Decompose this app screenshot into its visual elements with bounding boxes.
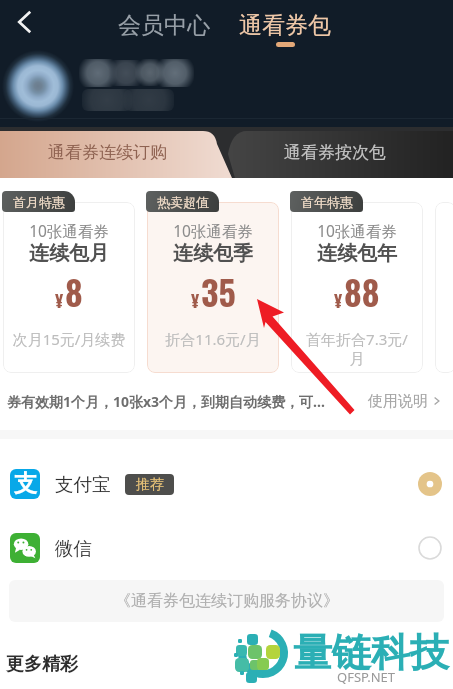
staticText: 微信 <box>55 537 92 560</box>
button[interactable]: 《通看券包连续订购服务协议》 <box>9 580 444 622</box>
button[interactable] <box>435 202 453 373</box>
staticText: 首年特惠 <box>301 194 353 210</box>
button[interactable]: 通看券连续订购 <box>0 127 215 178</box>
button[interactable]: 更多精彩 <box>6 653 78 676</box>
staticText: QFSP.NET <box>337 668 396 686</box>
staticText: 折合11.6元/月 <box>155 329 271 349</box>
button[interactable]: 微信 <box>0 516 453 580</box>
staticText: 通看券连续订购 <box>48 142 167 163</box>
staticText: 35 <box>201 266 236 316</box>
staticText: 10张通看券 <box>291 220 423 241</box>
staticText: 《通看券包连续订购服务协议》 <box>115 591 339 611</box>
staticText: 连续包月 <box>3 241 135 266</box>
staticText: 使用说明 <box>368 392 428 411</box>
button[interactable]: 会员中心 <box>114 9 214 42</box>
staticText: 更多精彩 <box>6 653 78 676</box>
staticText: 10张通看券 <box>147 220 279 241</box>
staticText: 连续包年 <box>291 241 423 266</box>
button[interactable]: 通看券按次包 <box>235 127 435 178</box>
button[interactable]: 10张通看券 <box>147 202 279 373</box>
staticText: 券有效期1个月，10张x3个月，到期自动续费，可... <box>7 392 325 411</box>
staticText: 通看券按次包 <box>284 142 386 163</box>
staticText: 通看券包 <box>239 11 331 40</box>
staticText: 支 <box>14 469 37 498</box>
button[interactable]: Back <box>2 0 46 44</box>
staticText: 8 <box>65 266 83 316</box>
button[interactable]: 10张通看券 <box>291 202 423 373</box>
staticText: 首月特惠 <box>13 194 65 210</box>
staticText: 10张通看券 <box>3 220 135 241</box>
button[interactable]: 10张通看券 <box>3 202 135 373</box>
staticText: ¥ <box>191 288 200 313</box>
staticText: 连续包季 <box>147 241 279 266</box>
staticText: 推荐 <box>136 476 164 494</box>
button[interactable]: 通看券包 <box>235 9 335 49</box>
staticText: 首年折合7.3元/月 <box>299 329 415 369</box>
staticText: 支付宝 <box>55 473 111 496</box>
button[interactable]: 券有效期1个月，10张x3个月，到期自动续费，可... <box>0 384 453 418</box>
staticText: ¥ <box>55 288 64 313</box>
staticText: 88 <box>344 266 380 316</box>
staticText: ¥ <box>334 288 343 313</box>
staticText: 量链科技 <box>293 628 449 677</box>
staticText: 热卖超值 <box>157 194 209 210</box>
button[interactable]: 支 <box>0 452 453 516</box>
staticText: 会员中心 <box>118 11 210 40</box>
staticText: 次月15元/月续费 <box>11 329 127 349</box>
